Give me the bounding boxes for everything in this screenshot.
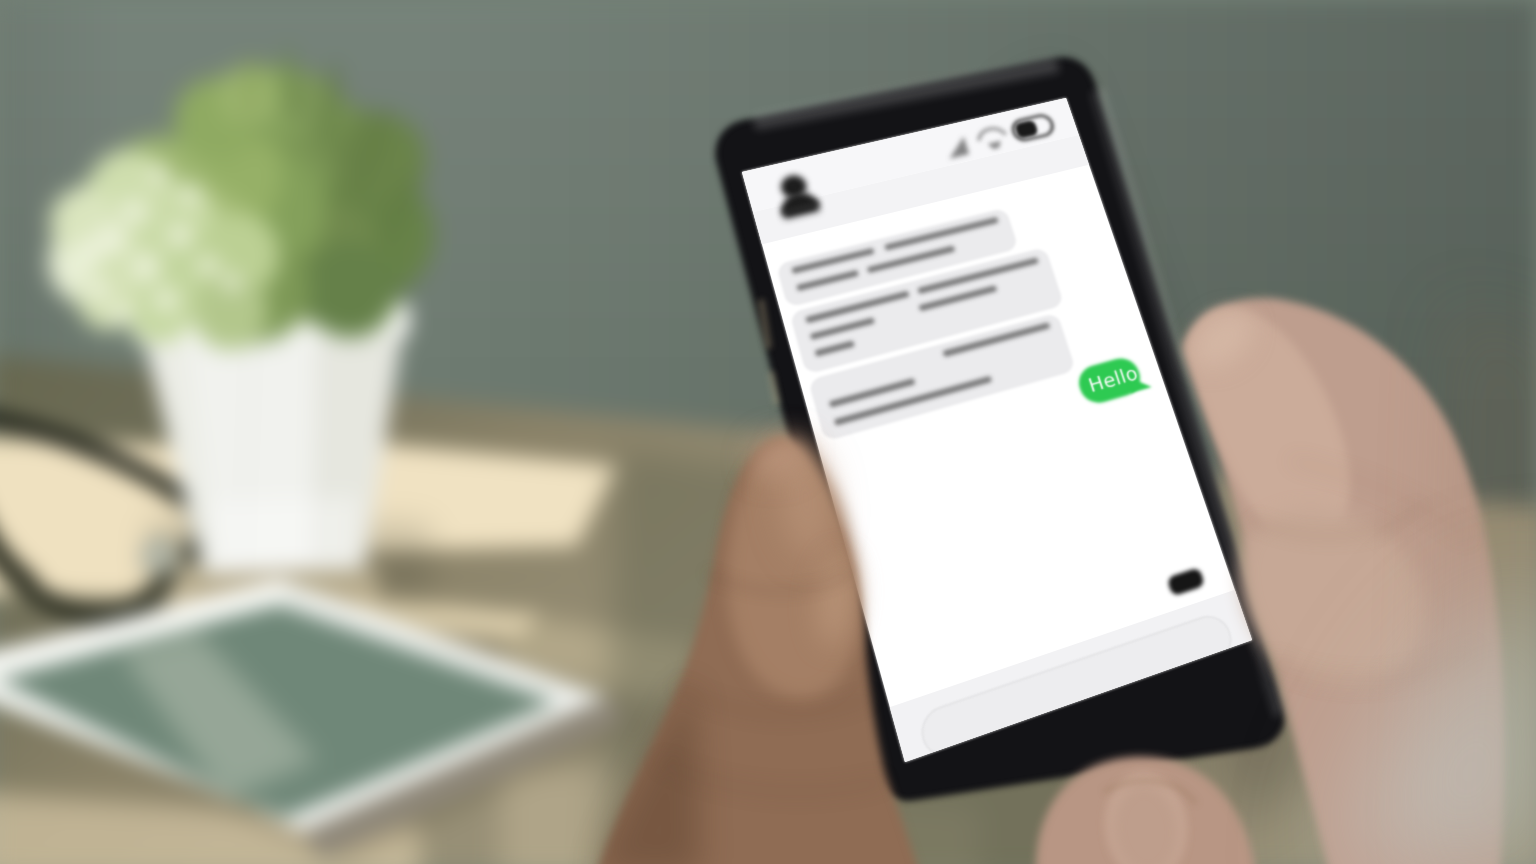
button[interactable]: Chat conversation on phone (0, 0, 1536, 864)
